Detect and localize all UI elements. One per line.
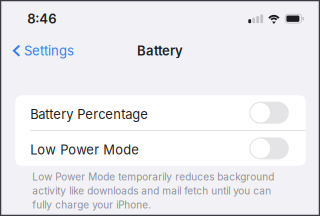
staticText: 8:46 <box>27 11 56 26</box>
staticText: Battery <box>137 43 183 58</box>
button[interactable]: Low Power Mode <box>15 131 306 166</box>
staticText: Settings <box>24 43 74 58</box>
button[interactable]: Battery Percentage <box>15 95 306 130</box>
staticText: Low Power Mode temporarily reduces backg… <box>32 171 274 211</box>
button[interactable]: Settings <box>2 39 74 62</box>
staticText: Low Power Mode <box>30 142 139 157</box>
staticText: Battery Percentage <box>30 106 148 122</box>
